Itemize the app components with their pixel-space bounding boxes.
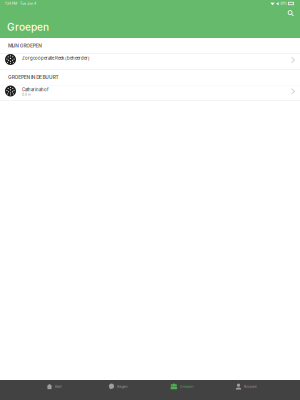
button[interactable]: Start (22, 380, 86, 400)
staticText: Groepen (7, 21, 49, 33)
button[interactable]: Vragen (86, 380, 150, 400)
button[interactable]: Zorgcoöperatie Reek (beheerder) (0, 54, 300, 69)
staticText: 1:24 PM Tue Jun 4 (5, 1, 36, 6)
staticText: Catharinahof (22, 87, 49, 92)
staticText: Account (243, 384, 256, 389)
button[interactable]: Search (285, 8, 297, 19)
button[interactable]: Groepen (150, 380, 214, 400)
staticText: Start (54, 384, 61, 389)
staticText: 0.0 m (22, 93, 31, 97)
staticText: Groepen (179, 384, 193, 389)
staticText: GROEPEN IN DE BUURT (8, 74, 58, 80)
button[interactable]: Catharinahof (0, 85, 300, 100)
button[interactable]: Account (214, 380, 278, 400)
staticText: MIJN GROEPEN (8, 43, 42, 49)
staticText: 61% (280, 1, 286, 6)
staticText: Zorgcoöperatie Reek (beheerder) (22, 56, 90, 61)
staticText: Vragen (116, 384, 127, 389)
